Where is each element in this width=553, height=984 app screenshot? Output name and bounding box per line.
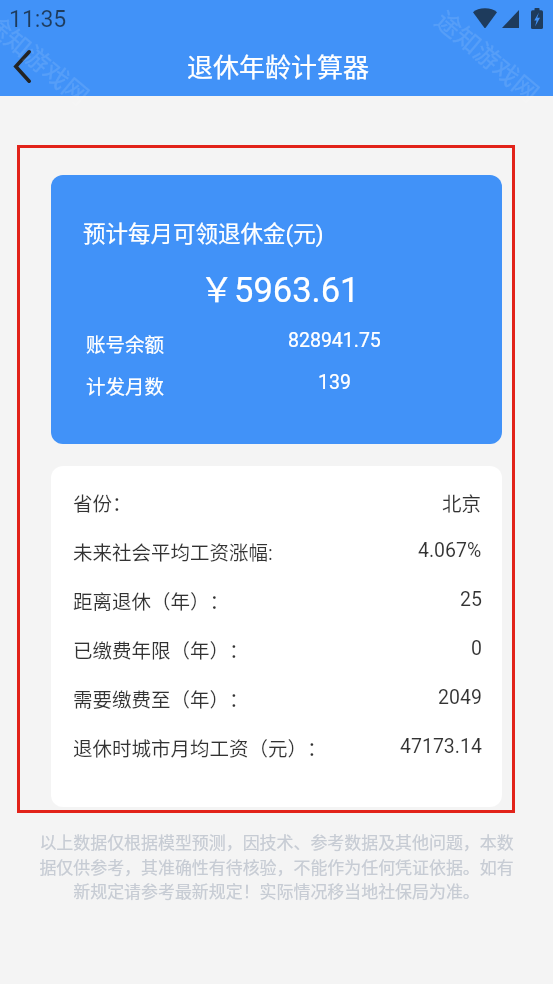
staticText: 北京 [442, 488, 482, 516]
staticText: 2049 [438, 686, 482, 709]
staticText: 距离退休（年）： [73, 586, 230, 614]
staticText: 25 [460, 588, 482, 611]
staticText: 退休时城市月均工资（元）： [73, 733, 327, 761]
staticText: ￥5963.61 [55, 262, 502, 312]
staticText: 账号余额 [86, 329, 165, 357]
staticText: 47173.14 [400, 735, 482, 758]
staticText: 4.067% [418, 539, 482, 562]
staticText: 已缴费年限（年）： [73, 635, 249, 663]
staticText: 未来社会平均工资涨幅: [73, 537, 273, 565]
button[interactable]: Back [0, 38, 50, 94]
staticText: 计发月数 [86, 371, 165, 399]
staticText: 以上数据仅根据模型预测，因技术、参考数据及其他问题，本数 据仅供参考，其准确性有… [20, 829, 533, 903]
staticText: 11:35 [9, 6, 67, 33]
staticText: 139 [318, 371, 351, 394]
staticText: 需要缴费至（年）： [73, 684, 249, 712]
staticText: 省份： [73, 488, 132, 516]
staticText: 0 [471, 637, 482, 660]
staticText: 828941.75 [288, 329, 381, 352]
staticText: 退休年龄计算器 [187, 47, 370, 85]
staticText: 预计每月可领退休金(元) [83, 216, 324, 249]
